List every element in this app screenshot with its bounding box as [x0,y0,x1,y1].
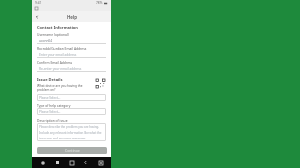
staticText: Please Select... [39,110,61,114]
button[interactable]: Please describe the problem you are havi… [37,123,106,141]
button[interactable]: Re-enter your email address [37,65,106,72]
button[interactable]: Enter your email address [37,51,106,58]
button[interactable]: Please Select... [37,108,106,115]
staticText: Username (optional) [37,32,69,36]
staticText: Re-enter your email address [39,67,82,71]
staticText: Please Select... [39,96,61,100]
button[interactable]: Menu [54,159,61,166]
staticText: Description of issue [37,118,68,122]
button[interactable]: Scan QR code [94,77,106,89]
button[interactable]: Continue [37,147,107,154]
button[interactable]: Back [32,12,42,22]
staticText: Continue [65,148,80,153]
staticText: Contact Information [37,25,78,30]
staticText: Issue Details [37,77,63,82]
button[interactable]: Back [82,159,89,166]
staticText: uconn04 [39,39,53,43]
staticText: 78% [96,1,103,5]
staticText: issue was and any error messages. [39,137,87,139]
button[interactable]: Please Select... [37,94,106,101]
staticText: Include any relevant information like wh… [39,131,102,135]
staticText: Type of help category [37,103,71,107]
staticText: Rocrobb/Gurdian Email Address [37,46,87,50]
button[interactable]: Home [68,159,75,166]
button[interactable]: uconn04 [37,37,106,44]
staticText: Help [67,14,77,20]
staticText: Enter your email address [39,53,77,57]
staticText: Confirm Email Address [37,60,73,64]
button[interactable]: Assistant [39,159,46,166]
staticText: What device are you having the problem o… [37,84,94,92]
staticText: Please describe the problem you are havi… [39,125,100,129]
staticText: 9:41 [35,1,42,5]
button[interactable]: Screenshot [97,159,104,166]
